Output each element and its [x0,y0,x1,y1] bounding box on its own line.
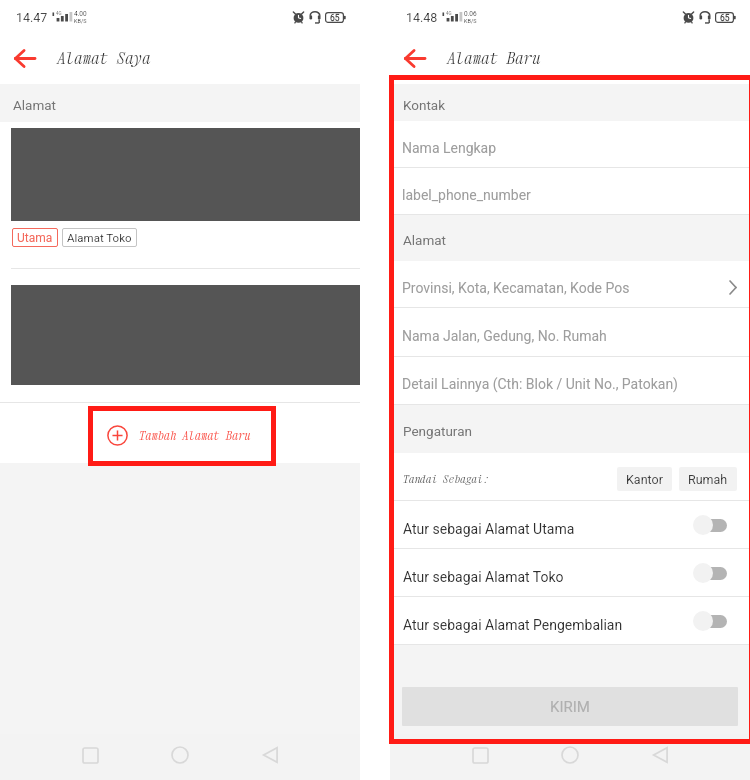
button[interactable]: Back [643,740,677,774]
staticText: Alamat [13,97,57,113]
staticText: Tambah Alamat Baru [139,428,251,443]
staticText: 14.48 [406,10,438,25]
staticText: 65 [330,13,340,23]
staticText: 4.00 [74,10,87,18]
staticText: Pengaturan [403,423,472,439]
staticText: Nama Jalan, Gedung, No. Rumah [402,328,607,344]
button[interactable]: Recents [463,740,497,774]
button[interactable]: Alamat Toko [62,228,137,247]
button[interactable]: KIRIM [402,687,738,726]
staticText: 0.06 [464,10,477,18]
button[interactable]: Recents [73,740,107,774]
staticText: 4G [446,11,452,16]
staticText: 65 [720,13,730,23]
button[interactable]: Rumah [679,467,737,491]
button[interactable]: Provinsi, Kota, Kecamatan, Kode Pos [390,261,750,308]
button[interactable]: Kantor [617,467,672,491]
button[interactable]: Nama Lengkap [390,121,750,168]
staticText: Provinsi, Kota, Kecamatan, Kode Pos [402,280,630,296]
staticText: Alamat Baru [447,48,541,68]
staticText: Atur sebagai Alamat Pengembalian [403,617,623,633]
button[interactable]: Atur sebagai Alamat Toko [390,549,750,597]
button[interactable]: Back [253,740,287,774]
staticText: 4G [56,11,62,16]
staticText: Atur sebagai Alamat Utama [403,521,575,537]
staticText: Detail Lainnya (Cth: Blok / Unit No., Pa… [402,376,678,392]
button[interactable]: Utama [12,228,58,247]
staticText: KIRIM [550,698,590,716]
staticText: Atur sebagai Alamat Toko [403,569,564,585]
staticText: Utama [17,231,53,245]
button[interactable]: label_phone_number [390,168,750,215]
button[interactable]: Atur sebagai Alamat Pengembalian [390,597,750,645]
button[interactable]: Tambah Alamat Baru [0,403,360,463]
staticText: Kontak [403,97,446,113]
button[interactable]: Back [390,32,438,84]
staticText: Alamat Saya [57,48,151,68]
staticText: Kantor [626,472,663,487]
button[interactable]: Detail Lainnya (Cth: Blok / Unit No., Pa… [390,357,750,405]
button[interactable]: Atur sebagai Alamat Utama [390,501,750,549]
staticText: Nama Lengkap [402,140,497,156]
staticText: KB/S [464,18,477,24]
staticText: Rumah [688,472,728,487]
staticText: label_phone_number [402,187,531,203]
button[interactable]: Nama Jalan, Gedung, No. Rumah [390,308,750,357]
button[interactable]: Back [0,32,48,84]
staticText: Alamat Toko [67,231,132,244]
button[interactable]: Home [163,740,197,774]
staticText: KB/S [74,18,87,24]
button[interactable]: Home [553,740,587,774]
staticText: Alamat [403,232,447,248]
staticText: 14.47 [16,10,48,25]
staticText: Tandai Sebagai: [403,472,489,486]
